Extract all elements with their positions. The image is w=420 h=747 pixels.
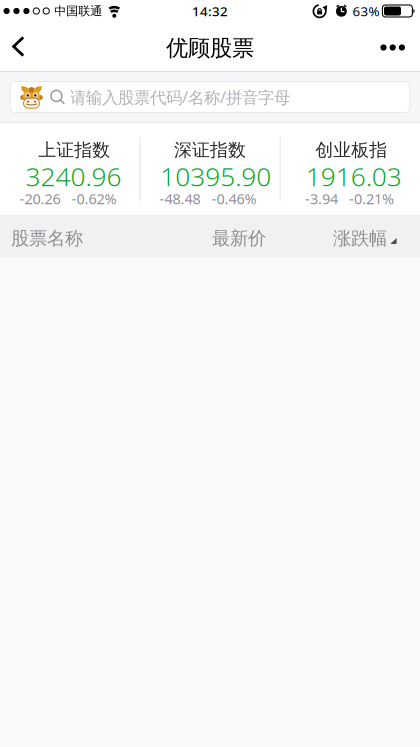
button[interactable]: 按涨跌幅排序 — [333, 227, 420, 250]
staticText: 优顾股票 — [166, 34, 254, 62]
staticText: -0.46% — [212, 189, 257, 208]
staticText: -48.48 — [160, 189, 201, 208]
staticText: 创业板指 — [315, 139, 387, 161]
button[interactable]: 创业板指 — [281, 123, 420, 215]
button[interactable]: 返回 — [0, 22, 41, 71]
staticText: -20.26 — [20, 189, 61, 208]
button[interactable]: 上证指数 — [0, 123, 139, 215]
staticText: 涨跌幅 — [333, 227, 387, 250]
staticText: 3240.96 — [25, 158, 121, 194]
staticText: 63% — [352, 2, 379, 20]
button[interactable]: 更多 — [366, 22, 420, 71]
staticText: 14:32 — [192, 2, 228, 20]
staticText: 深证指数 — [174, 139, 246, 161]
staticText: 上证指数 — [38, 139, 110, 161]
staticText: 1916.03 — [306, 158, 402, 194]
button[interactable]: 搜索股票 — [10, 81, 410, 112]
staticText: 最新价 — [212, 227, 266, 250]
staticText: -0.62% — [72, 189, 117, 208]
staticText: 股票名称 — [11, 227, 83, 250]
staticText: -3.94 — [305, 189, 338, 208]
staticText: 10395.90 — [160, 158, 271, 194]
staticText: 请输入股票代码/名称/拼音字母 — [70, 86, 290, 108]
staticText: 中国联通 — [54, 4, 102, 18]
button[interactable]: 深证指数 — [140, 123, 280, 215]
staticText: -0.21% — [349, 189, 394, 208]
